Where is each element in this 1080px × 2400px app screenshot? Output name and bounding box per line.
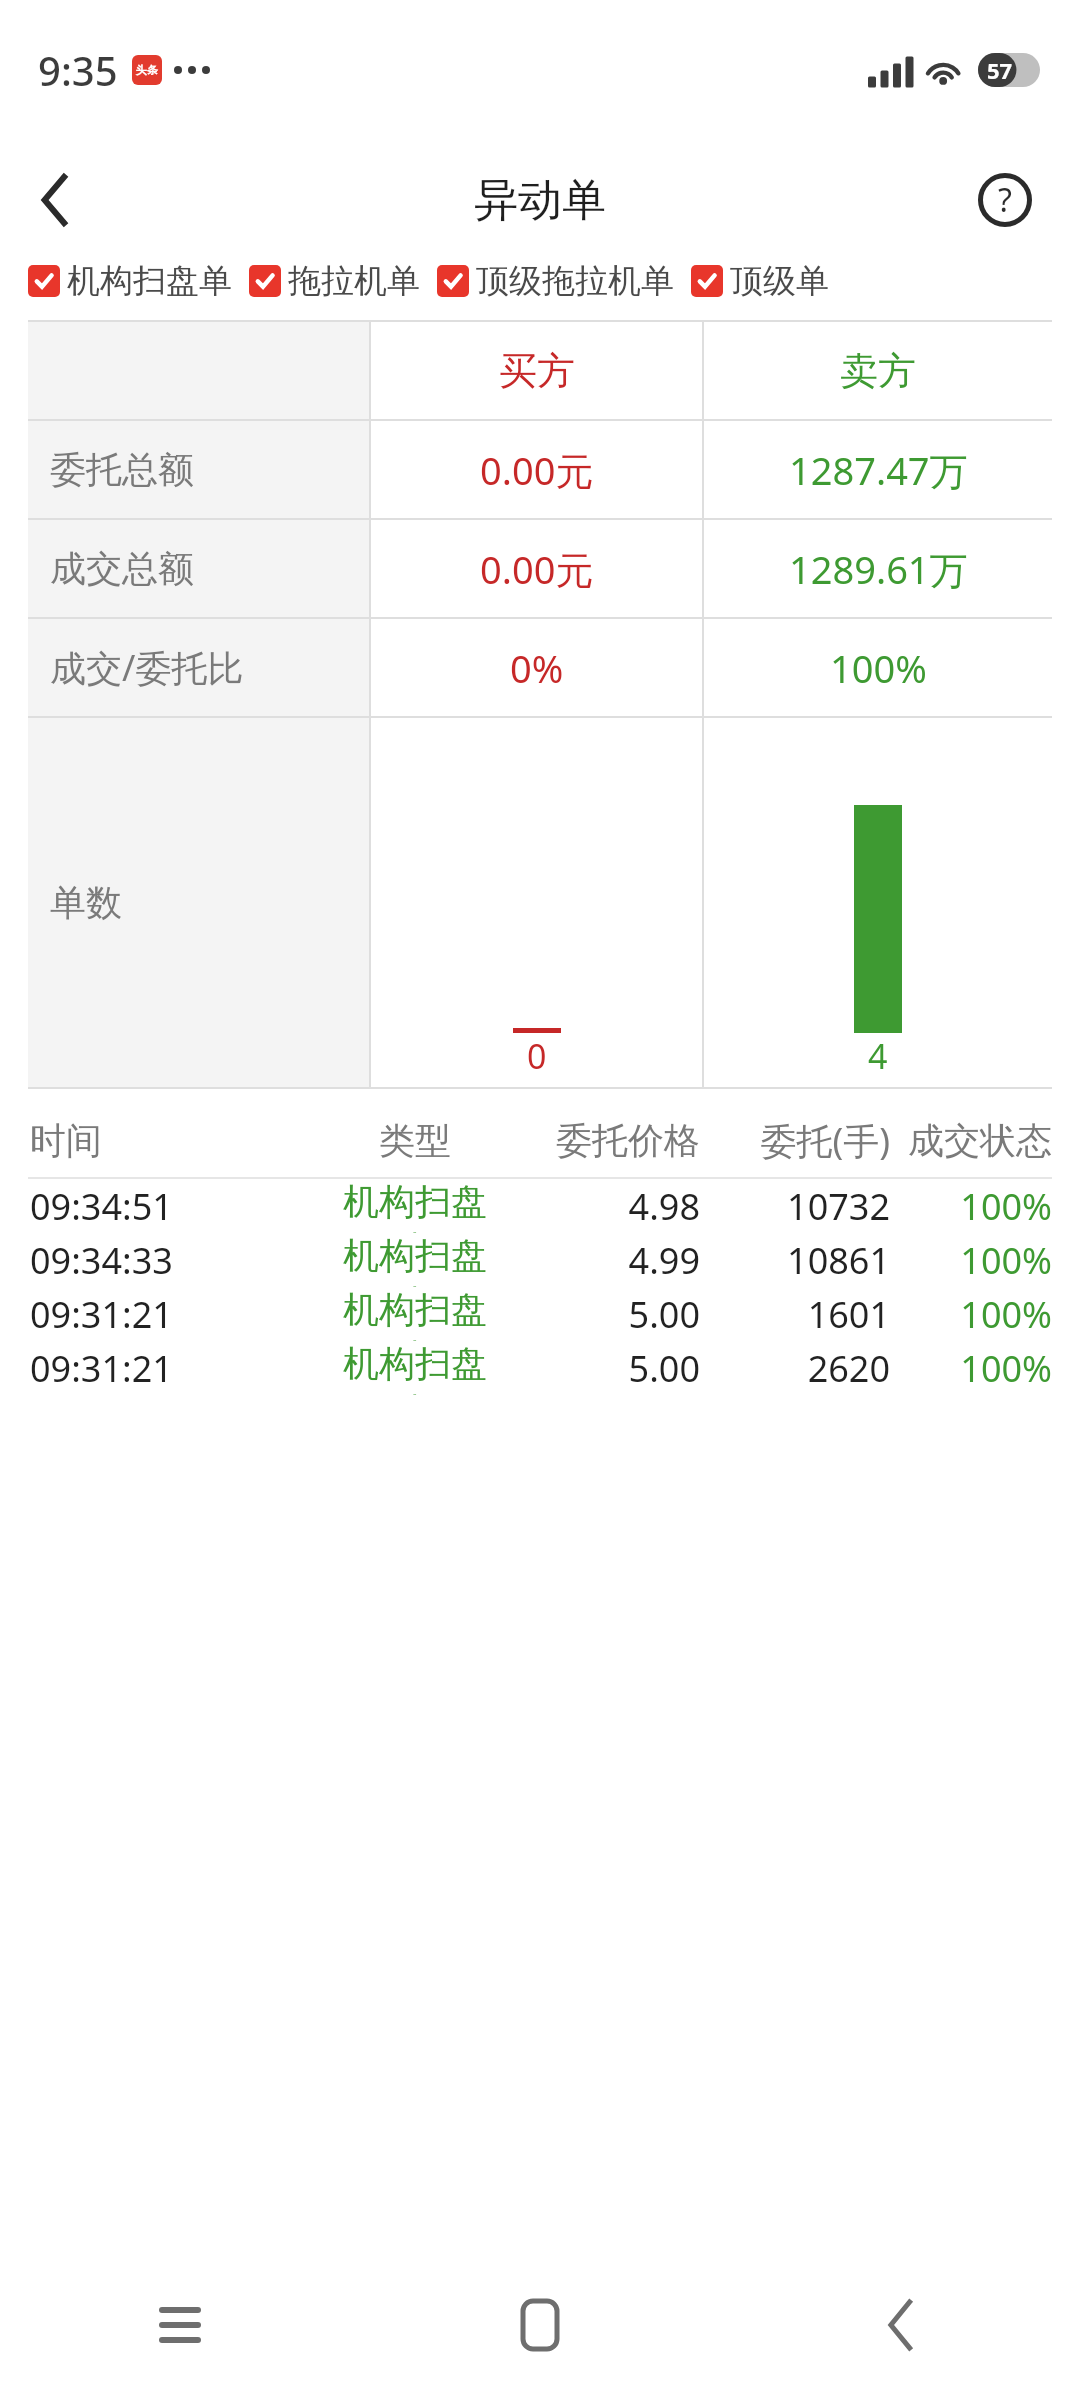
staticText: 9:35 <box>38 43 118 97</box>
staticText: 5.00 <box>500 1344 700 1393</box>
staticText: 100% <box>890 1182 1052 1231</box>
staticText: 机构扫盘卖 <box>330 1341 500 1395</box>
staticText: 拖拉机单 <box>288 260 420 302</box>
staticText: 10732 <box>700 1182 890 1231</box>
button[interactable]: Back <box>720 2250 1080 2400</box>
staticText: 类型 <box>330 1118 500 1163</box>
staticText: 4 <box>868 1033 888 1079</box>
button[interactable]: 顶级单 <box>691 260 829 302</box>
staticText: 0.00元 <box>480 444 594 496</box>
staticText: 0.00元 <box>480 543 594 595</box>
button[interactable]: 09:34:51 <box>0 1179 1080 1233</box>
staticText: 买方 <box>499 347 575 395</box>
staticText: 时间 <box>30 1118 330 1163</box>
staticText: 0% <box>510 642 564 694</box>
button[interactable]: 机构扫盘单 <box>28 260 232 302</box>
staticText: 09:34:51 <box>30 1182 330 1231</box>
staticText: 机构扫盘单 <box>67 260 232 302</box>
staticText: 2620 <box>700 1344 890 1393</box>
button[interactable]: 09:31:21 <box>0 1287 1080 1341</box>
staticText: 100% <box>890 1344 1052 1393</box>
button[interactable]: 拖拉机单 <box>249 260 420 302</box>
staticText: 卖方 <box>840 347 916 395</box>
button[interactable]: Back <box>0 145 110 255</box>
staticText: 异动单 <box>474 173 606 228</box>
button[interactable]: 09:34:33 <box>0 1233 1080 1287</box>
staticText: 09:34:33 <box>30 1236 330 1285</box>
staticText: 成交状态 <box>890 1118 1052 1163</box>
staticText: 单数 <box>50 880 122 925</box>
staticText: 委托总额 <box>50 447 194 492</box>
button[interactable]: Help <box>968 163 1042 237</box>
staticText: 5.00 <box>500 1290 700 1339</box>
staticText: 机构扫盘卖 <box>330 1287 500 1341</box>
button[interactable]: 09:31:21 <box>0 1341 1080 1395</box>
staticText: 1601 <box>700 1290 890 1339</box>
staticText: 成交/委托比 <box>50 643 244 692</box>
staticText: 0 <box>527 1033 547 1079</box>
staticText: 10861 <box>700 1236 890 1285</box>
staticText: 100% <box>890 1236 1052 1285</box>
staticText: 机构扫盘卖 <box>330 1179 500 1233</box>
staticText: 100% <box>890 1290 1052 1339</box>
staticText: 机构扫盘卖 <box>330 1233 500 1287</box>
staticText: 09:31:21 <box>30 1344 330 1393</box>
staticText: 委托价格 <box>500 1118 700 1163</box>
staticText: 1287.47万 <box>789 444 968 496</box>
staticText: 100% <box>830 642 927 694</box>
staticText: 09:31:21 <box>30 1290 330 1339</box>
button[interactable]: Recents <box>0 2250 360 2400</box>
staticText: 委托(手) <box>700 1116 890 1165</box>
staticText: 头条 <box>136 63 158 77</box>
staticText: 1289.61万 <box>789 543 968 595</box>
staticText: ? <box>998 178 1012 222</box>
staticText: 成交总额 <box>50 546 194 591</box>
staticText: 57 <box>987 55 1013 85</box>
button[interactable]: Home <box>360 2250 720 2400</box>
staticText: 4.98 <box>500 1182 700 1231</box>
staticText: 4.99 <box>500 1236 700 1285</box>
staticText: 顶级拖拉机单 <box>476 260 674 302</box>
staticText: 顶级单 <box>730 260 829 302</box>
button[interactable]: 顶级拖拉机单 <box>437 260 674 302</box>
